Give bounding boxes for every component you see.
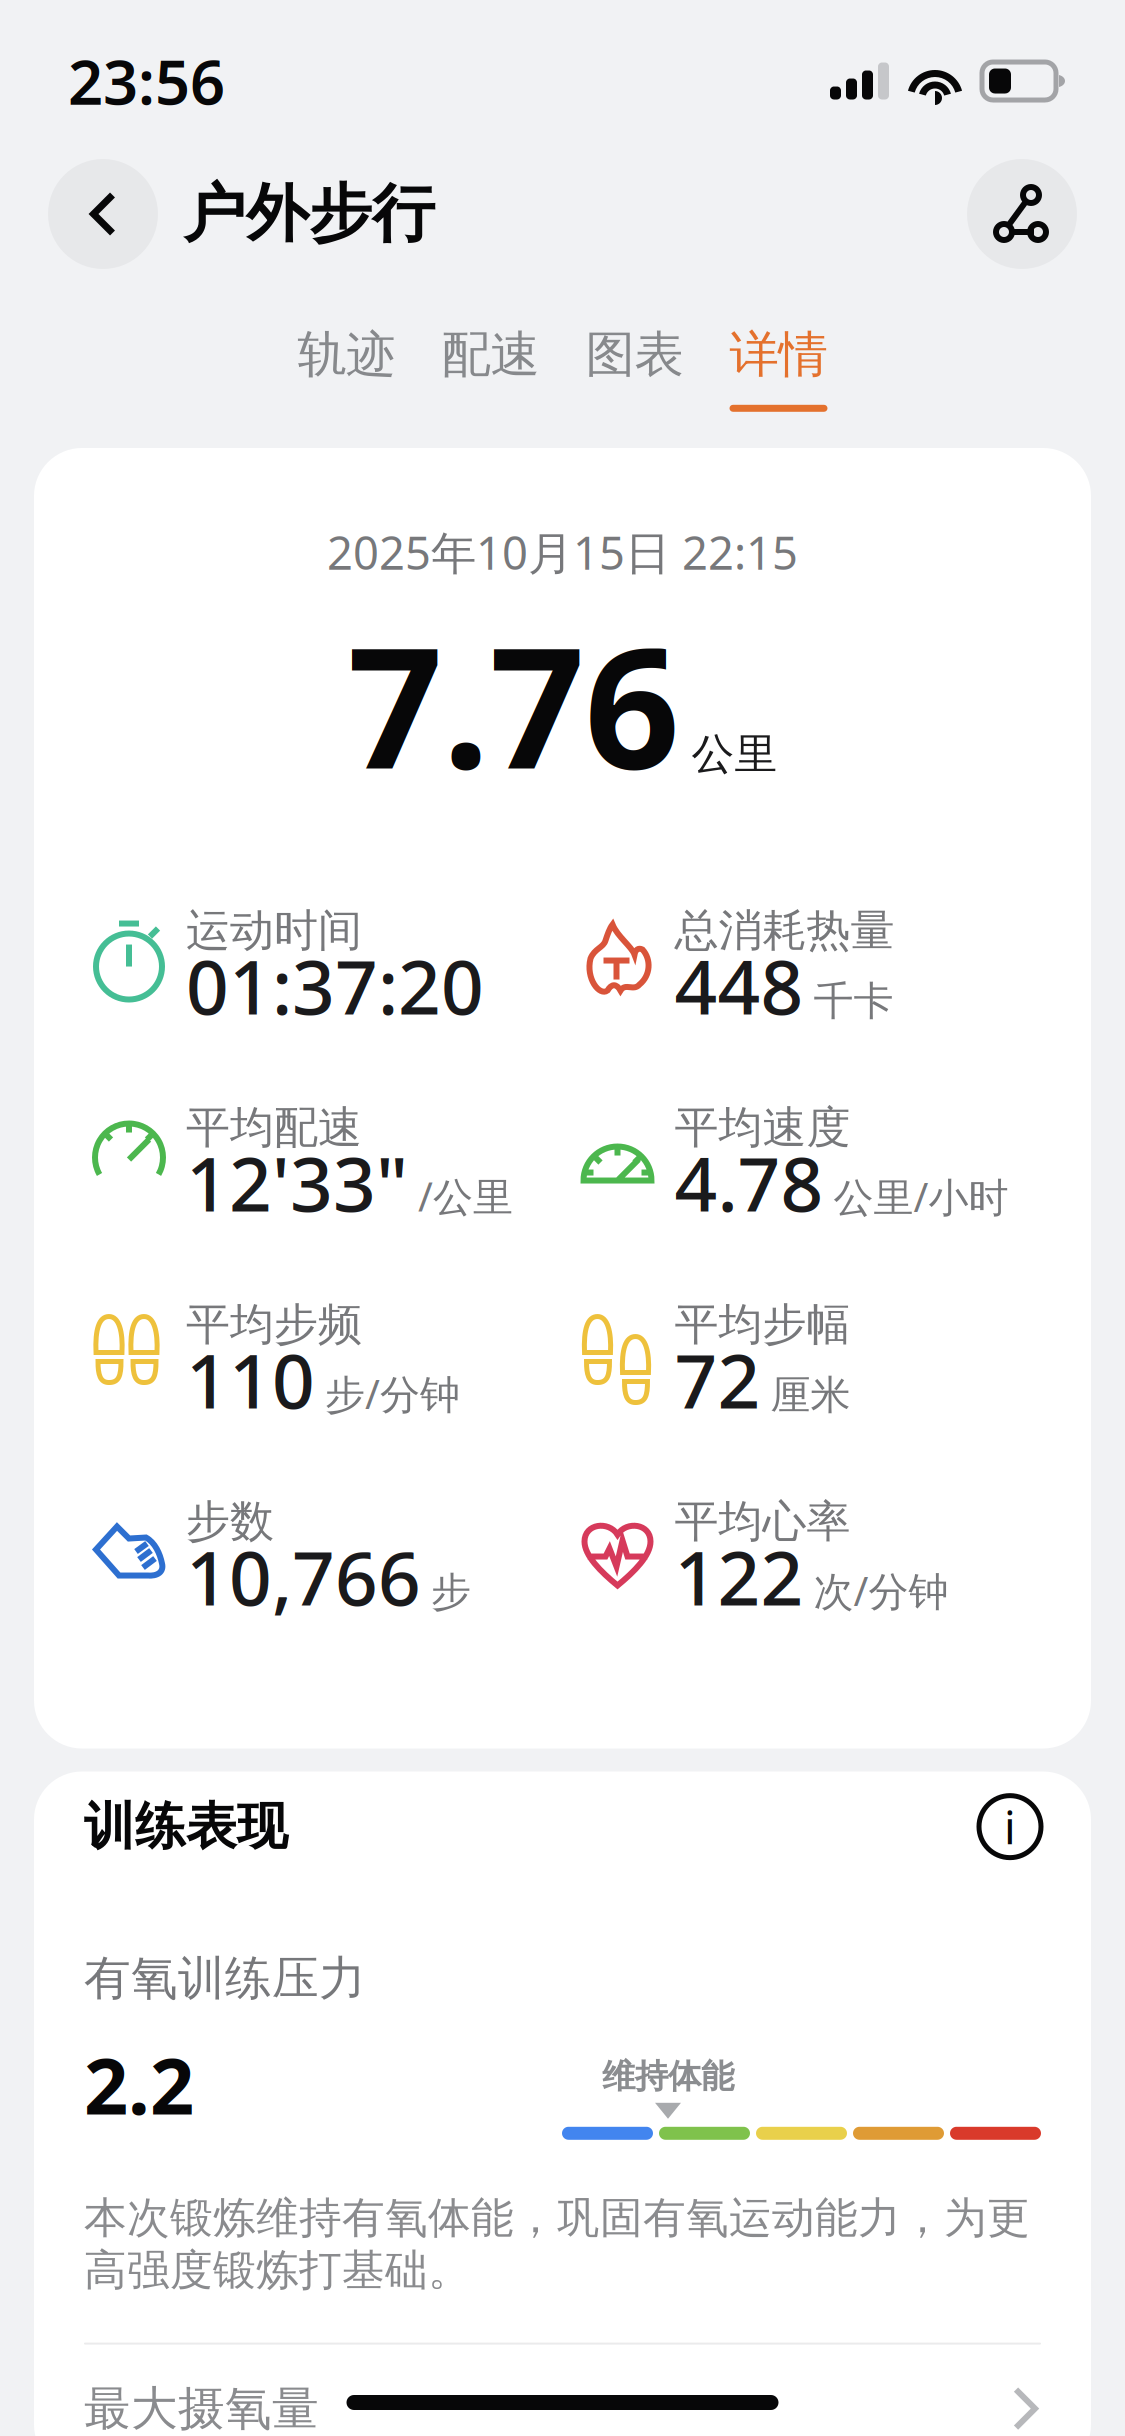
staticText: 7.76 (347, 593, 679, 814)
staticText: 最大摄氧量 (84, 2380, 319, 2436)
staticText: 4.78 (674, 1133, 823, 1232)
staticText: 平均配速 (186, 1100, 362, 1154)
button[interactable]: 分享 (967, 159, 1077, 269)
staticText: 本次锻炼维持有氧体能，巩固有氧运动能力，为更高强度锻炼打基础。 (84, 2192, 1030, 2297)
staticText: 公里/小时 (833, 1170, 1008, 1223)
staticText: 公里 (691, 728, 777, 780)
staticText: 厘米 (770, 1371, 850, 1420)
button[interactable]: 图表 (562, 288, 706, 448)
staticText: 步 (431, 1568, 471, 1617)
button[interactable]: 配速 (418, 288, 562, 448)
staticText: 2025年10月15日 22:15 (327, 522, 798, 582)
staticText: 总消耗热量 (674, 903, 894, 957)
staticText: 维持体能 (602, 2056, 734, 2097)
staticText: 平均速度 (674, 1100, 850, 1154)
staticText: 千卡 (813, 977, 893, 1026)
staticText: 有氧训练压力 (84, 1950, 366, 2007)
staticText: 平均步频 (186, 1297, 362, 1351)
staticText: 配速 (441, 324, 539, 385)
button[interactable]: 说明 (979, 1796, 1041, 1858)
staticText: 平均步幅 (674, 1297, 850, 1351)
staticText: 110 (186, 1330, 315, 1429)
staticText: 步数 (186, 1494, 274, 1548)
staticText: 户外步行 (183, 175, 435, 252)
staticText: 72 (674, 1330, 760, 1429)
staticText: 448 (674, 936, 803, 1035)
button[interactable]: 详情 (706, 288, 850, 448)
staticText: 23:56 (68, 40, 225, 122)
staticText: 图表 (585, 324, 683, 385)
staticText: 轨迹 (297, 324, 395, 385)
staticText: /公里 (418, 1169, 513, 1222)
staticText: i (1004, 1796, 1016, 1857)
staticText: 平均心率 (674, 1494, 850, 1548)
button[interactable]: 返回 (48, 159, 158, 269)
staticText: 训练表现 (84, 1795, 288, 1858)
staticText: 详情 (729, 324, 827, 385)
staticText: 122 (674, 1527, 803, 1626)
staticText: 运动时间 (186, 903, 362, 957)
staticText: 01:37:20 (186, 936, 484, 1035)
button[interactable]: 轨迹 (274, 288, 418, 448)
staticText: 10,766 (186, 1527, 421, 1626)
button[interactable]: 最大摄氧量 (84, 2345, 1041, 2436)
staticText: 次/分钟 (813, 1564, 948, 1617)
staticText: 12'33" (186, 1133, 408, 1232)
staticText: 步/分钟 (325, 1367, 460, 1420)
staticText: 2.2 (84, 2033, 194, 2136)
